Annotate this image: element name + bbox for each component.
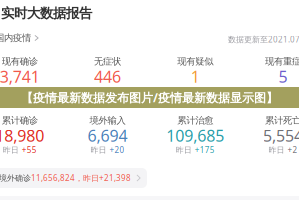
staticText: 昨日 — [176, 145, 192, 155]
staticText: 昨日 — [269, 86, 285, 96]
staticText: 累计死亡 — [265, 115, 299, 126]
staticText: 境外输入 — [90, 115, 126, 126]
staticText: 数据更新至2021.07.05 — [228, 34, 299, 45]
staticText: +20 — [110, 145, 125, 155]
staticText: 现有确诊 — [2, 56, 38, 67]
staticText: -122 — [20, 86, 38, 96]
staticText: +25 — [110, 86, 125, 96]
staticText: +55 — [22, 145, 37, 155]
staticText: 6,694 — [88, 125, 128, 146]
staticText: 昨日 — [91, 145, 107, 155]
staticText: 446 — [94, 66, 121, 87]
staticText: 国内疫情 — [0, 32, 31, 44]
staticText: 累计治愈 — [177, 115, 213, 126]
staticText: 累计确诊 — [2, 115, 38, 126]
staticText: 1 — [191, 66, 200, 87]
staticText: 现有疑似 — [177, 56, 213, 67]
staticText: 18,980 — [0, 125, 44, 146]
staticText: 【疫情最新数据发布图片/疫情最新数据显示图】 — [21, 89, 278, 105]
button[interactable]: 境外确诊 — [0, 168, 147, 188]
staticText: 昨日 — [1, 86, 17, 96]
staticText: 无症状 — [94, 56, 121, 67]
staticText: 109,685 — [166, 125, 224, 146]
staticText: 昨日 — [268, 145, 284, 155]
staticText: +175 — [195, 145, 215, 155]
staticText: -1 — [288, 86, 296, 96]
staticText: 5 — [278, 66, 287, 87]
staticText: 5,554 — [263, 125, 299, 146]
staticText: 昨日 — [181, 86, 197, 96]
staticText: 现有重症 — [265, 56, 299, 67]
staticText: 境外确诊 — [0, 173, 31, 183]
staticText: +0 — [200, 86, 210, 96]
staticText: 昨日 — [3, 145, 19, 155]
staticText: 实时大数据报告 — [1, 5, 92, 21]
staticText: 11,656,824，昨日+21,398 — [31, 173, 131, 183]
button[interactable]: 国内疫情 — [0, 32, 39, 44]
staticText: +2 — [287, 145, 297, 155]
staticText: 昨日 — [91, 86, 107, 96]
staticText: 3,741 — [0, 66, 40, 87]
